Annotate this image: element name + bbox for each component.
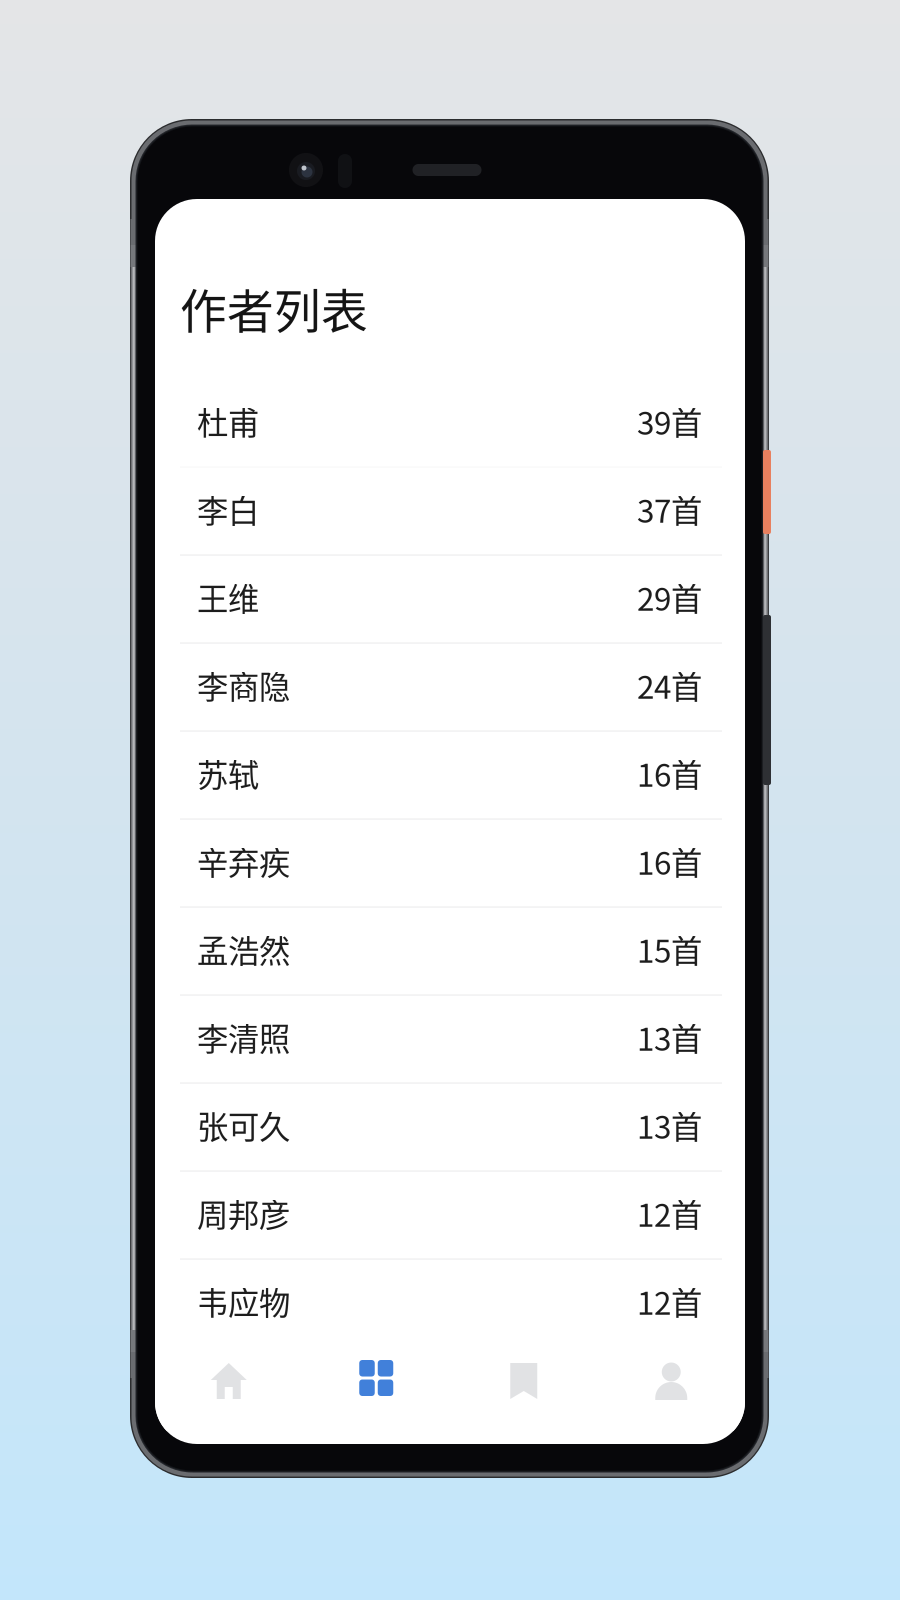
staticText: 李商隐 bbox=[197, 662, 290, 708]
staticText: 16首 bbox=[637, 838, 702, 884]
button[interactable]: 辛弃疾 bbox=[155, 817, 745, 905]
button[interactable]: 李商隐 bbox=[155, 641, 745, 729]
staticText: 张可久 bbox=[197, 1102, 290, 1148]
staticText: 13首 bbox=[637, 1102, 702, 1148]
button[interactable]: Profile bbox=[597, 1331, 745, 1431]
staticText: 杜甫 bbox=[197, 398, 259, 444]
staticText: 苏轼 bbox=[197, 750, 259, 796]
button[interactable]: 张可久 bbox=[155, 1081, 745, 1169]
staticText: 作者列表 bbox=[180, 274, 368, 342]
button[interactable]: Bookmarks bbox=[450, 1331, 597, 1431]
staticText: 孟浩然 bbox=[197, 926, 290, 972]
staticText: 16首 bbox=[637, 750, 702, 796]
button[interactable]: Home bbox=[155, 1331, 302, 1431]
staticText: 李白 bbox=[197, 486, 259, 532]
staticText: 韦应物 bbox=[197, 1278, 290, 1324]
staticText: 周邦彦 bbox=[197, 1190, 290, 1236]
button[interactable]: 王维 bbox=[155, 553, 745, 641]
button[interactable]: 孟浩然 bbox=[155, 905, 745, 993]
button[interactable]: 韦应物 bbox=[155, 1257, 745, 1345]
staticText: 29首 bbox=[637, 574, 702, 620]
button[interactable]: 杜甫 bbox=[155, 377, 745, 465]
staticText: 12首 bbox=[637, 1190, 702, 1236]
staticText: 辛弃疾 bbox=[197, 838, 290, 884]
button[interactable]: 李清照 bbox=[155, 993, 745, 1081]
staticText: 12首 bbox=[637, 1278, 702, 1324]
staticText: 39首 bbox=[637, 398, 702, 444]
button[interactable]: 李白 bbox=[155, 465, 745, 553]
button[interactable]: 周邦彦 bbox=[155, 1169, 745, 1257]
staticText: 37首 bbox=[637, 486, 702, 532]
staticText: 李清照 bbox=[197, 1014, 290, 1060]
button[interactable]: 苏轼 bbox=[155, 729, 745, 817]
button[interactable]: Categories bbox=[302, 1331, 450, 1431]
staticText: 13首 bbox=[637, 1014, 702, 1060]
staticText: 24首 bbox=[637, 662, 702, 708]
staticText: 15首 bbox=[637, 926, 702, 972]
staticText: 王维 bbox=[197, 574, 259, 620]
